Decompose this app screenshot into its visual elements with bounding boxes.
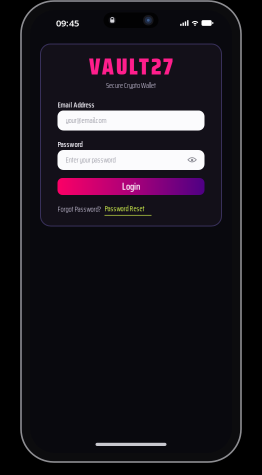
staticText: 09:45 <box>56 17 79 29</box>
button[interactable]: Password Reset <box>104 203 151 216</box>
staticText: your@email.com <box>65 115 106 126</box>
staticText: Login <box>122 179 140 194</box>
staticText: Forgot Password? <box>57 204 101 215</box>
button[interactable]: Login <box>57 178 204 195</box>
staticText: Secure Crypto Wallet <box>106 80 156 91</box>
button[interactable]: your@email.com <box>57 110 204 130</box>
staticText: Enter your password <box>65 154 115 166</box>
staticText: Password Reset <box>104 203 144 214</box>
staticText: VAULT27 <box>89 49 173 84</box>
staticText: Password <box>57 139 82 150</box>
button[interactable]: Enter your password <box>57 150 204 170</box>
staticText: Email Address <box>57 99 94 111</box>
